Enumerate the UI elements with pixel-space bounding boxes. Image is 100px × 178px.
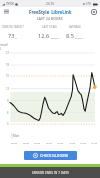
button[interactable]: SENSOR ENDS IN 7 DAYS [0, 167, 100, 178]
staticText: TIME IN TARGET [2, 25, 24, 29]
staticText: 73 [8, 32, 15, 40]
staticText: 78900 [6, 2, 14, 6]
staticText: LAST SCAN [42, 25, 57, 29]
staticText: 21:00 [91, 141, 98, 144]
staticText: 9 [7, 99, 9, 103]
staticText: 3 [7, 122, 9, 126]
button[interactable]: LAST SCAN [29, 25, 69, 40]
staticText: 09:00 [46, 141, 53, 144]
staticText: 03:00 [23, 141, 30, 144]
staticText: SENSOR ENDS IN 7 DAYS [32, 171, 69, 175]
button[interactable]: AVERAGE [55, 25, 95, 40]
staticText: mmol/L [74, 36, 84, 39]
button[interactable]: TIME IN TARGET [0, 25, 33, 40]
staticText: 21 [6, 51, 9, 55]
staticText: AVERAGE [69, 25, 82, 29]
staticText: CHECK GLUCOSE [40, 153, 69, 158]
staticText: LAST 24 HOURS [37, 17, 63, 21]
staticText: 18:00 [80, 141, 87, 144]
staticText: 8.5 [66, 32, 74, 40]
staticText: 12.6 [38, 32, 50, 40]
staticText: 23:16 [46, 2, 55, 6]
button[interactable]: Menu [0, 7, 12, 16]
staticText: 6 [7, 111, 9, 115]
staticText: 57% [86, 2, 92, 6]
staticText: 18 [6, 63, 9, 67]
staticText: 12 [6, 87, 9, 91]
staticText: FreeStyle [29, 9, 50, 15]
staticText: LibreLink [50, 9, 72, 15]
staticText: 12:00 [57, 141, 64, 144]
staticText: mmol/L [0, 43, 9, 51]
button[interactable]: Scan new sensor [88, 7, 100, 16]
staticText: % [15, 36, 18, 39]
staticText: mmol/L [50, 36, 60, 39]
button[interactable]: CHECK GLUCOSE [24, 151, 77, 160]
staticText: 15 [6, 74, 9, 78]
staticText: 06:00 [34, 141, 41, 144]
staticText: 00:00 [11, 141, 18, 144]
staticText: 15:00 [69, 141, 76, 144]
staticText: Mon [13, 134, 20, 138]
